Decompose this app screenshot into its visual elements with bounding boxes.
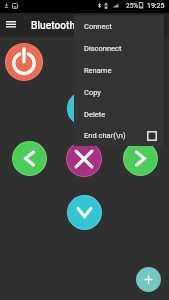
button[interactable]: Up <box>67 91 102 126</box>
button[interactable]: Stop <box>66 141 102 177</box>
button[interactable]: End char(\n) <box>74 125 164 146</box>
staticText: Copy <box>84 88 101 97</box>
staticText: End char(\n) <box>84 131 147 140</box>
button[interactable]: Right <box>123 141 158 176</box>
button[interactable]: Down <box>67 195 102 230</box>
button[interactable]: Delete <box>74 103 164 125</box>
staticText: Connect <box>84 22 112 31</box>
staticText: Rename <box>84 66 112 75</box>
button[interactable]: Navigation menu <box>0 13 22 36</box>
button[interactable]: Left <box>12 141 47 176</box>
button[interactable]: Connect <box>74 15 164 37</box>
staticText: Delete <box>84 110 106 119</box>
button[interactable]: Rename <box>74 59 164 81</box>
button[interactable]: Power <box>5 43 43 81</box>
button[interactable]: Disconnect <box>74 37 164 59</box>
staticText: 25% <box>126 2 139 10</box>
staticText: 19:25 <box>147 2 165 10</box>
staticText: Disconnect <box>84 44 122 53</box>
button[interactable]: Add <box>136 267 161 292</box>
staticText: Bluetooth <box>31 20 76 32</box>
button[interactable]: Copy <box>74 81 164 103</box>
